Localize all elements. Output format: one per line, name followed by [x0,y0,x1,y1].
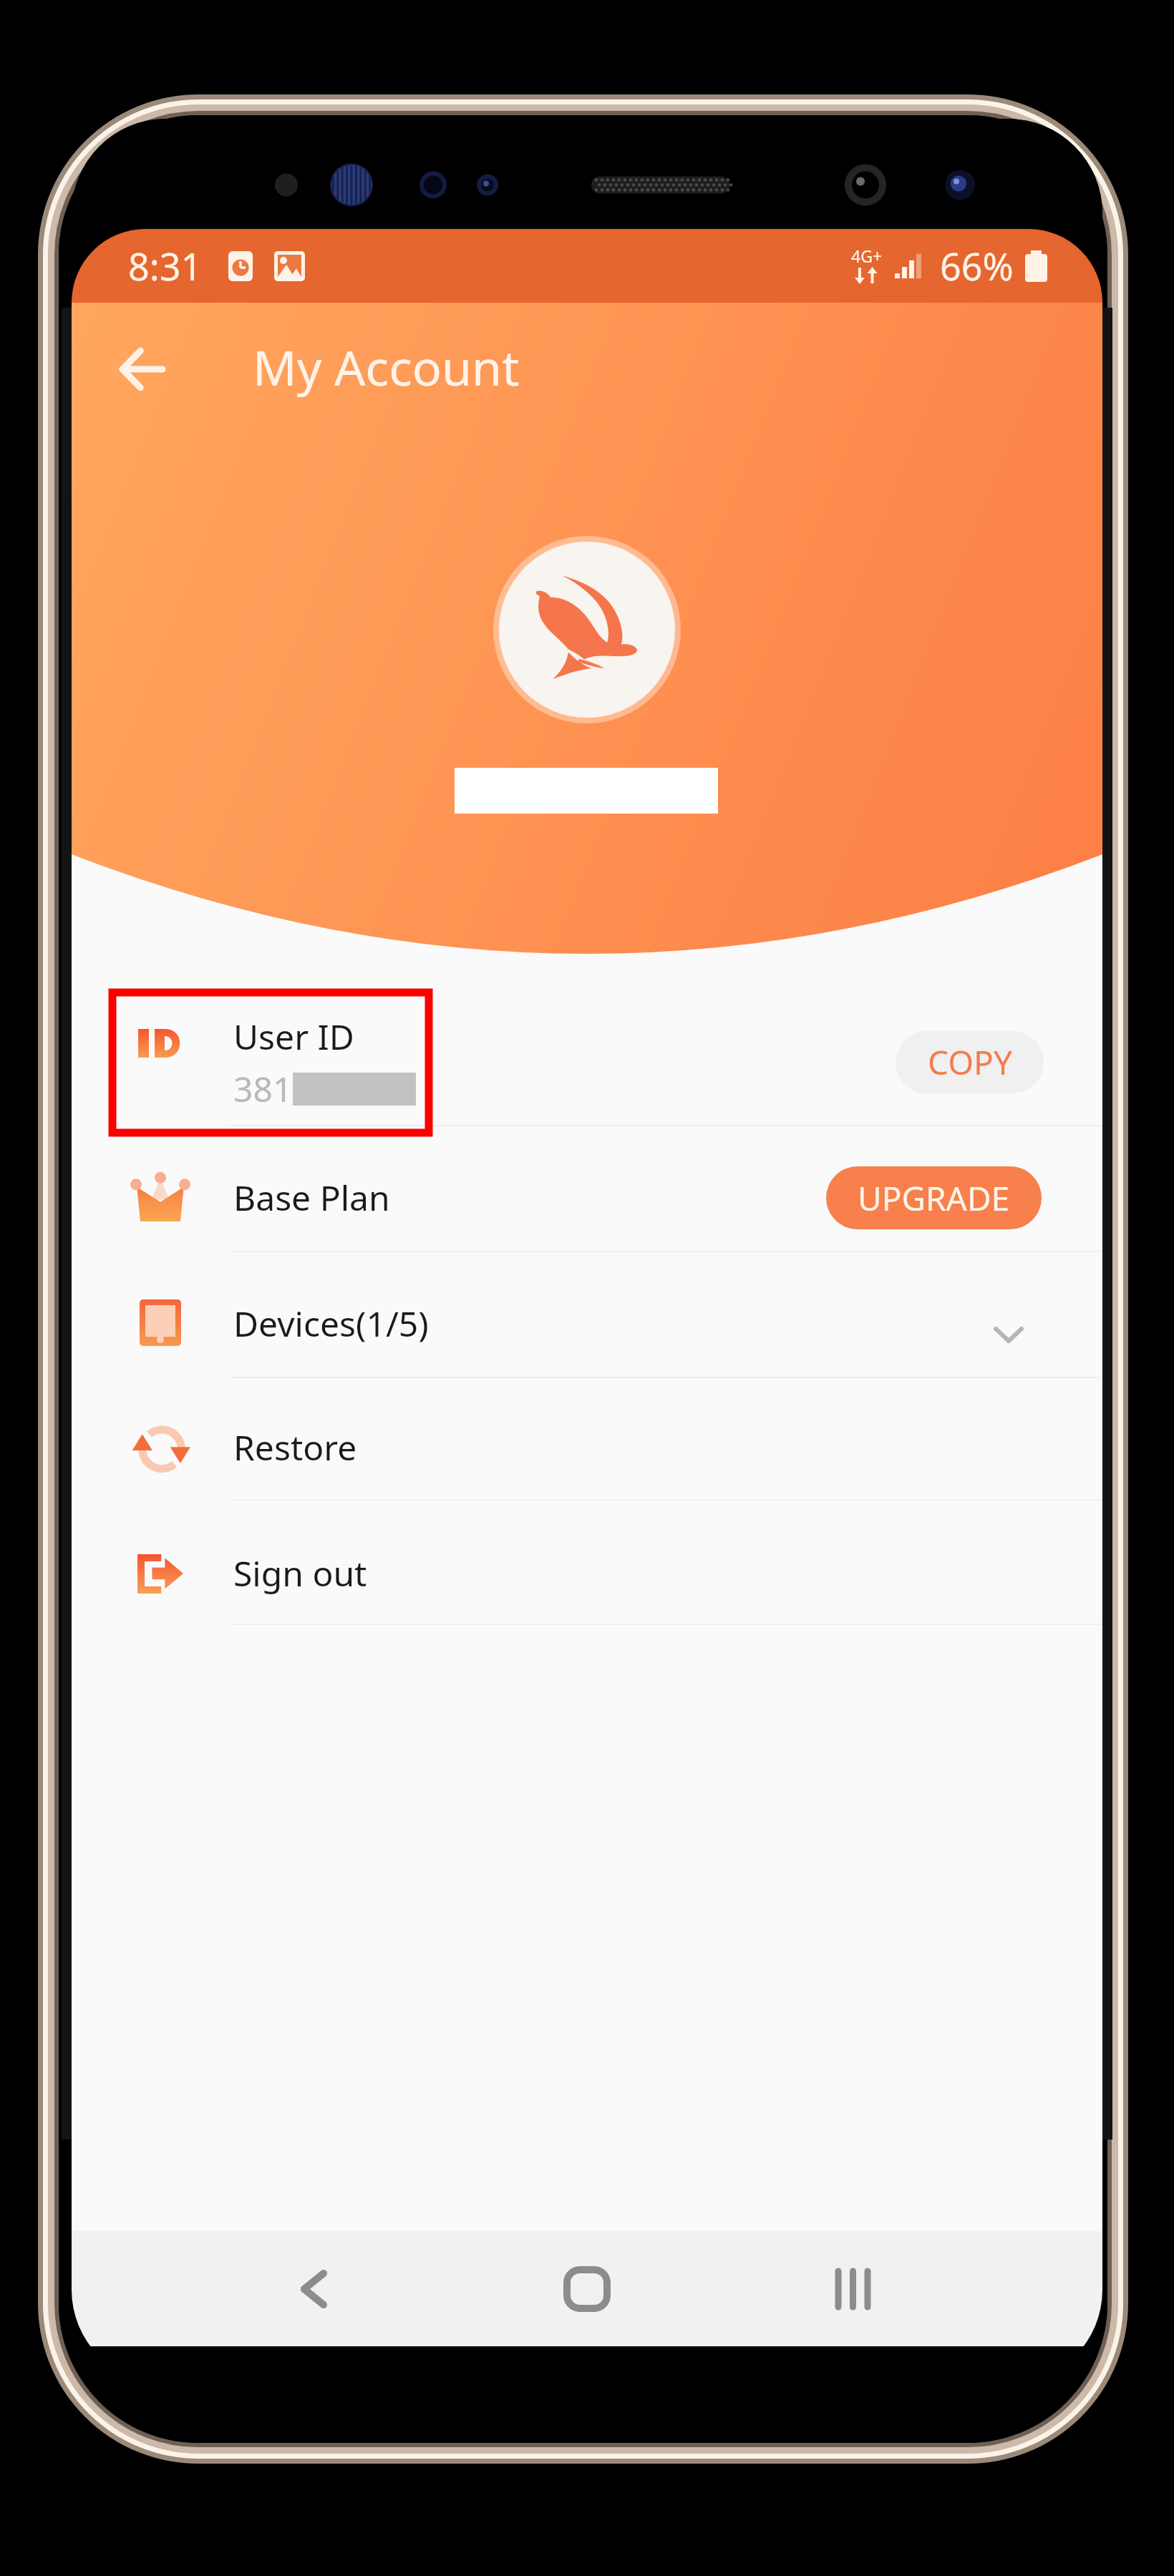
button[interactable]: Restore [72,1385,1102,1510]
staticText: User ID [233,1013,354,1060]
button[interactable]: Home [537,2250,637,2328]
staticText: 8:31 [128,240,203,291]
staticText: UPGRADE [858,1176,1010,1221]
staticText: 4G+ [851,245,883,267]
button[interactable]: Expand devices [976,1302,1041,1367]
button[interactable]: COPY [896,1031,1044,1093]
button[interactable]: Back [263,2250,364,2328]
staticText: Restore [233,1424,357,1470]
staticText: Sign out [233,1550,367,1596]
staticText: 66% [940,240,1014,291]
button[interactable]: User ID [72,1000,1102,1125]
staticText: 381 [233,1065,293,1112]
button[interactable]: Devices(1/5) [72,1261,1102,1386]
button[interactable]: Sign out [72,1511,1102,1636]
button[interactable]: Back [99,326,185,412]
staticText: COPY [928,1040,1012,1085]
staticText: Devices(1/5) [233,1300,429,1347]
button[interactable]: Base Plan [72,1135,1102,1260]
staticText: My Account [253,333,520,400]
button[interactable]: UPGRADE [826,1166,1042,1229]
staticText: Base Plan [233,1174,390,1221]
button[interactable]: Recent apps [802,2250,903,2328]
